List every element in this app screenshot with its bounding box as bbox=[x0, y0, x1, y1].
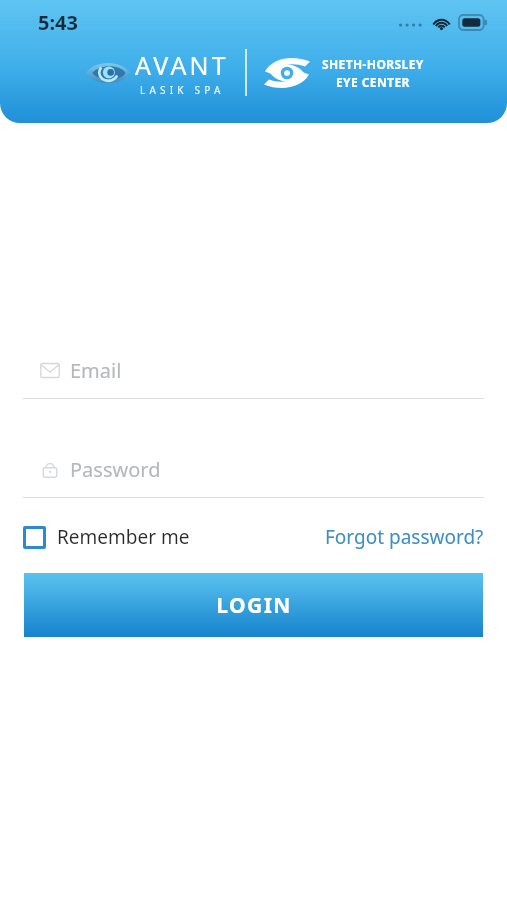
button[interactable]: Forgot password? bbox=[325, 524, 484, 550]
staticText: Password bbox=[70, 456, 161, 483]
staticText: 5:43 bbox=[38, 9, 78, 36]
staticText: Remember me bbox=[57, 524, 190, 550]
staticText: AVANT bbox=[135, 48, 229, 82]
button[interactable]: Email bbox=[0, 355, 507, 399]
button[interactable]: Password bbox=[0, 454, 507, 498]
staticText: EYE CENTER bbox=[336, 74, 410, 90]
button[interactable]: Remember me bbox=[23, 524, 190, 550]
staticText: Email bbox=[70, 357, 122, 384]
staticText: LOGIN bbox=[216, 591, 292, 620]
staticText: LASIK SPA bbox=[140, 83, 225, 97]
staticText: SHETH-HORSLEY bbox=[322, 56, 424, 72]
button[interactable]: LOGIN bbox=[24, 573, 483, 637]
